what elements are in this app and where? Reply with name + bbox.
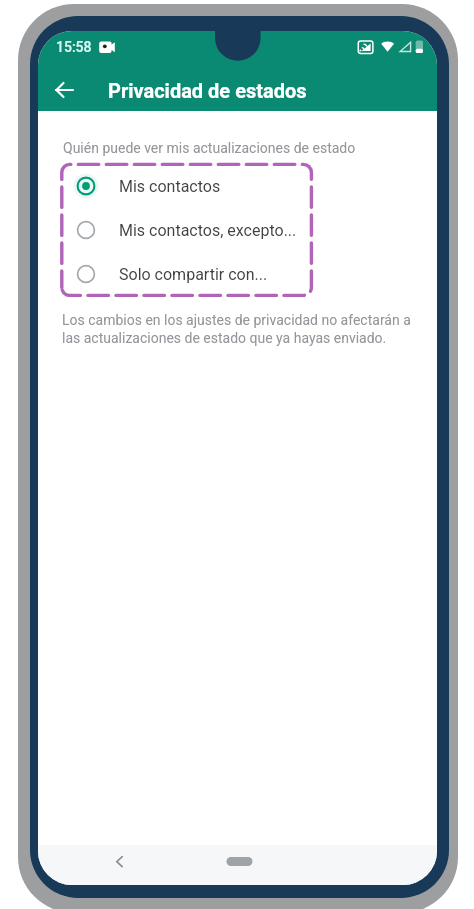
staticText: Mis contactos, excepto...	[119, 221, 297, 240]
staticText: Los cambios en los ajustes de privacidad…	[62, 312, 422, 346]
button[interactable]: Atrás	[43, 68, 86, 111]
staticText: 15:58	[56, 39, 92, 55]
button[interactable]: Solo compartir con...	[38, 252, 437, 296]
staticText: Solo compartir con...	[119, 265, 268, 284]
staticText: Mis contactos	[119, 177, 221, 196]
button[interactable]: Atrás	[104, 845, 136, 877]
staticText: Quién puede ver mis actualizaciones de e…	[63, 140, 356, 156]
button[interactable]: Mis contactos	[38, 164, 437, 208]
staticText: Privacidad de estados	[108, 79, 307, 102]
button[interactable]: Mis contactos, excepto...	[38, 208, 437, 252]
